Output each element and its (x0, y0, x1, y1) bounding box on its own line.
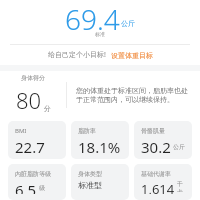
staticText: 脂肪率 (78, 127, 96, 135)
staticText: 标准型 (78, 180, 102, 190)
staticText: 身体类型 (78, 170, 102, 178)
staticText: 内脏脂肪等级 (15, 170, 51, 178)
staticText: 22.7 (15, 137, 45, 153)
staticText: 6.5 (15, 180, 37, 194)
staticText: 千卡… (177, 180, 188, 192)
staticText: 30.2 (141, 137, 171, 153)
staticText: 分 (44, 104, 51, 113)
staticText: 1,614 (141, 180, 175, 194)
staticText: 基础代谢率 (141, 170, 171, 178)
staticText: 级 (39, 184, 45, 192)
staticText: 骨骼肌量 (141, 127, 165, 135)
staticText: 69.4 (65, 0, 120, 31)
button[interactable]: BMI (8, 121, 66, 159)
button[interactable]: 骨骼肌量 (134, 121, 192, 159)
staticText: 身体得分 (21, 74, 45, 82)
button[interactable]: 身体类型 (71, 164, 129, 200)
button[interactable]: 内脏脂肪等级 (8, 164, 66, 200)
staticText: 标准 (95, 31, 105, 37)
staticText: 您的体重处于标准区间，脂肪率也处于正常范围内，可以继续保持。 (76, 86, 192, 104)
button[interactable]: 设置体重目标 (111, 51, 153, 60)
staticText: 公斤 (173, 143, 185, 151)
button[interactable]: 脂肪率 (71, 121, 129, 159)
staticText: 18.1% (78, 137, 121, 153)
staticText: 设置体重目标 (111, 51, 153, 60)
staticText: 公斤 (121, 19, 135, 28)
button[interactable]: 基础代谢率 (134, 164, 192, 200)
staticText: BMI (15, 127, 27, 135)
staticText: 给自己定个小目标! (48, 50, 106, 60)
staticText: 80 (16, 85, 42, 115)
